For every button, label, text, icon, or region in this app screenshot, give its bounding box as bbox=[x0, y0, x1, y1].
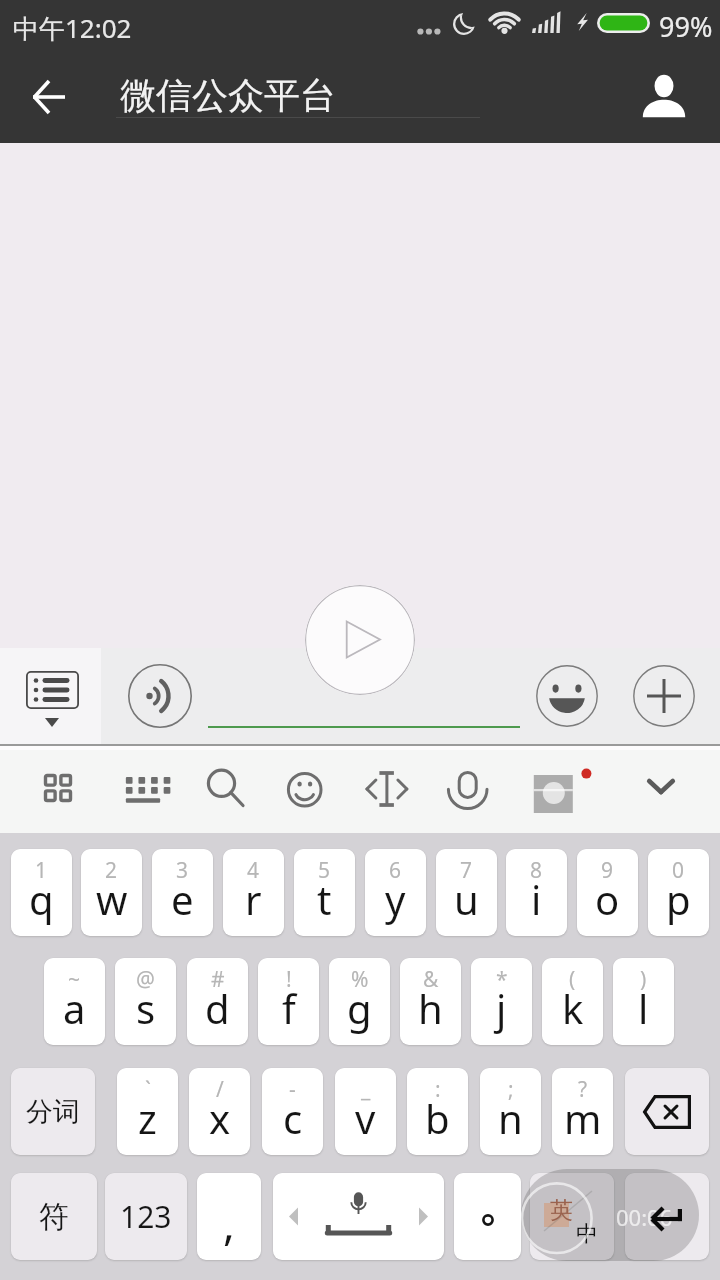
button[interactable]: Play bbox=[305, 585, 415, 695]
staticText: o bbox=[595, 872, 620, 926]
button[interactable]: 8 bbox=[506, 849, 567, 936]
button[interactable]: @ bbox=[115, 958, 176, 1045]
button[interactable]: Profile bbox=[628, 61, 700, 133]
button[interactable]: ` bbox=[117, 1068, 178, 1155]
button[interactable]: Shortcuts bbox=[0, 648, 101, 744]
staticText: 英 bbox=[550, 1196, 573, 1225]
button[interactable]: Switch input language bbox=[530, 1173, 614, 1260]
staticText: % bbox=[351, 965, 369, 994]
staticText: n bbox=[498, 1091, 523, 1145]
staticText: j bbox=[496, 981, 507, 1035]
staticText: / bbox=[216, 1075, 224, 1104]
staticText: v bbox=[355, 1091, 376, 1145]
staticText: 5 bbox=[318, 856, 331, 885]
button[interactable]: ~ bbox=[44, 958, 105, 1045]
button[interactable]: Move cursor bbox=[353, 754, 421, 822]
staticText: h bbox=[418, 981, 443, 1035]
button[interactable]: Apps bbox=[24, 754, 92, 822]
staticText: r bbox=[245, 872, 262, 926]
staticText: m bbox=[564, 1091, 602, 1145]
staticText: # bbox=[211, 965, 225, 994]
button[interactable]: ; bbox=[480, 1068, 541, 1155]
button[interactable]: 3 bbox=[152, 849, 213, 936]
button[interactable]: 1 bbox=[11, 849, 72, 936]
button[interactable]: 7 bbox=[436, 849, 497, 936]
staticText: d bbox=[205, 981, 230, 1035]
staticText: t bbox=[317, 872, 332, 926]
button[interactable]: / bbox=[189, 1068, 250, 1155]
button[interactable]: Space bbox=[273, 1173, 444, 1260]
button[interactable]: Enter bbox=[625, 1173, 709, 1260]
staticText: 0 bbox=[672, 856, 685, 885]
button[interactable]: * bbox=[471, 958, 532, 1045]
button[interactable]: # bbox=[187, 958, 248, 1045]
button[interactable]: Back bbox=[13, 61, 85, 133]
staticText: , bbox=[223, 1193, 235, 1253]
button[interactable]: - bbox=[262, 1068, 323, 1155]
staticText: 123 bbox=[120, 1196, 172, 1237]
button[interactable]: Screen recorder bbox=[521, 1169, 699, 1261]
button[interactable]: Backspace bbox=[625, 1068, 709, 1155]
button[interactable]: Period bbox=[454, 1173, 521, 1260]
staticText: 9 bbox=[601, 856, 614, 885]
staticText: ~ bbox=[68, 965, 81, 994]
button[interactable]: Keyboard layout bbox=[109, 754, 177, 822]
button[interactable]: 0 bbox=[648, 849, 709, 936]
staticText: 8 bbox=[530, 856, 543, 885]
staticText: c bbox=[283, 1091, 303, 1145]
button[interactable]: 5 bbox=[294, 849, 355, 936]
staticText: k bbox=[562, 981, 584, 1035]
button[interactable]: ? bbox=[552, 1068, 613, 1155]
button[interactable]: 分词 bbox=[11, 1068, 95, 1155]
staticText: 符 bbox=[39, 1198, 69, 1236]
staticText: g bbox=[347, 981, 372, 1035]
staticText: 00:06 bbox=[616, 1202, 673, 1232]
button[interactable]: Handwriting bbox=[514, 754, 582, 822]
button[interactable]: % bbox=[329, 958, 390, 1045]
button[interactable]: 符 bbox=[11, 1173, 97, 1260]
staticText: : bbox=[435, 1075, 441, 1104]
button[interactable]: Voice message bbox=[128, 664, 192, 728]
button[interactable]: 4 bbox=[223, 849, 284, 936]
staticText: s bbox=[136, 981, 156, 1035]
staticText: ? bbox=[578, 1075, 588, 1104]
button[interactable]: Emoji bbox=[536, 665, 598, 727]
staticText: ! bbox=[286, 965, 292, 994]
button[interactable]: 6 bbox=[365, 849, 426, 936]
button[interactable]: _ bbox=[335, 1068, 396, 1155]
staticText: ` bbox=[145, 1075, 151, 1104]
staticText: 分词 bbox=[26, 1095, 80, 1129]
button[interactable]: : bbox=[407, 1068, 468, 1155]
staticText: 3 bbox=[176, 856, 189, 885]
staticText: 99% bbox=[659, 8, 713, 45]
staticText: a bbox=[63, 981, 86, 1035]
staticText: w bbox=[96, 872, 128, 926]
staticText: @ bbox=[136, 965, 155, 994]
staticText: 6 bbox=[389, 856, 402, 885]
staticText: z bbox=[138, 1091, 157, 1145]
staticText: 7 bbox=[460, 856, 473, 885]
button[interactable]: ) bbox=[613, 958, 674, 1045]
button[interactable]: ( bbox=[542, 958, 603, 1045]
button[interactable]: Emoji bbox=[270, 754, 338, 822]
button[interactable]: 123 bbox=[105, 1173, 187, 1260]
staticText: 4 bbox=[247, 856, 260, 885]
staticText: i bbox=[531, 872, 542, 926]
button[interactable]: Hide keyboard bbox=[627, 754, 695, 822]
staticText: ) bbox=[640, 965, 647, 994]
button[interactable]: 9 bbox=[577, 849, 638, 936]
button[interactable]: Search bbox=[191, 754, 259, 822]
staticText: l bbox=[638, 981, 649, 1035]
button[interactable]: More options bbox=[633, 665, 695, 727]
button[interactable]: Voice input bbox=[433, 754, 501, 822]
staticText: p bbox=[666, 872, 691, 926]
staticText: ; bbox=[508, 1075, 514, 1104]
staticText: 中午12:02 bbox=[13, 10, 132, 46]
button[interactable]: & bbox=[400, 958, 461, 1045]
staticText: * bbox=[496, 965, 508, 994]
staticText: y bbox=[385, 872, 406, 926]
staticText: b bbox=[425, 1091, 450, 1145]
button[interactable]: 2 bbox=[81, 849, 142, 936]
button[interactable]: Comma bbox=[197, 1173, 261, 1260]
button[interactable]: ! bbox=[258, 958, 319, 1045]
